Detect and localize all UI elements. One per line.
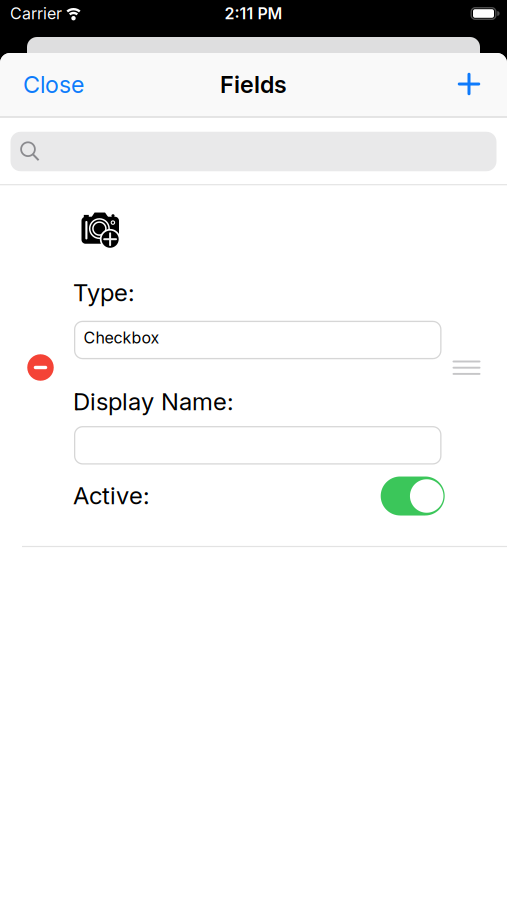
staticText: Active:: [73, 481, 150, 510]
button[interactable]: Delete: [27, 354, 54, 381]
staticText: 2:11 PM: [224, 4, 282, 23]
staticText: Carrier: [10, 4, 62, 23]
staticText: Type:: [73, 278, 135, 307]
button[interactable]: Add: [447, 62, 491, 106]
staticText: Close: [23, 70, 84, 99]
button[interactable]: Type: [74, 321, 441, 359]
button[interactable]: Close: [0, 62, 120, 106]
staticText: Fields: [220, 70, 287, 99]
button[interactable]: Active: [381, 476, 445, 515]
button[interactable]: Reorder: [444, 351, 488, 385]
button[interactable]: Display Name: [74, 426, 441, 465]
staticText: Checkbox: [83, 328, 159, 347]
staticText: Display Name:: [73, 387, 234, 416]
button[interactable]: Search: [10, 132, 496, 171]
